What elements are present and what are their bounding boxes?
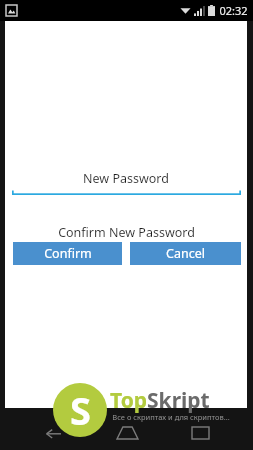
staticText: New Password [83, 170, 169, 187]
button[interactable]: Cancel [130, 242, 241, 265]
staticText: Confirm New Password [58, 224, 195, 241]
button[interactable]: Recents [180, 416, 220, 450]
staticText: Cancel [166, 245, 205, 262]
staticText: 02:32 [219, 3, 248, 18]
staticText: Все о скриптах и для скриптов... [112, 412, 230, 422]
staticText: S [70, 384, 91, 436]
button[interactable]: Home [107, 416, 147, 450]
staticText: Confirm [44, 245, 92, 262]
button[interactable]: New Password [5, 167, 247, 189]
staticText: TopSkript [110, 386, 210, 415]
button[interactable]: Back [33, 416, 73, 450]
button[interactable]: Confirm [13, 242, 122, 265]
